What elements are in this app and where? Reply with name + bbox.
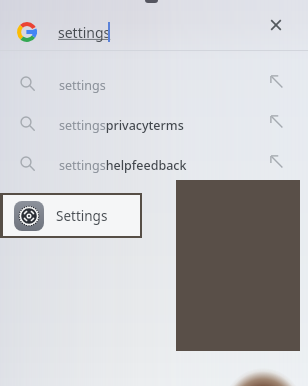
button[interactable]: Settings [3, 195, 140, 236]
button[interactable]: settingsprivacyterms [0, 104, 308, 144]
button[interactable]: Insert suggestion [268, 153, 284, 169]
button[interactable]: settingshelpfeedback [0, 144, 308, 184]
button[interactable]: Clear search [264, 13, 288, 37]
staticText: settings [58, 23, 111, 42]
button[interactable]: Insert suggestion [268, 113, 284, 129]
staticText: settings [59, 77, 106, 94]
button[interactable]: Insert suggestion [268, 73, 284, 89]
staticText: Settings [56, 207, 108, 225]
staticText: settingsprivacyterms [59, 117, 184, 134]
staticText: settingshelpfeedback [59, 157, 187, 174]
button[interactable]: settings [0, 64, 308, 104]
